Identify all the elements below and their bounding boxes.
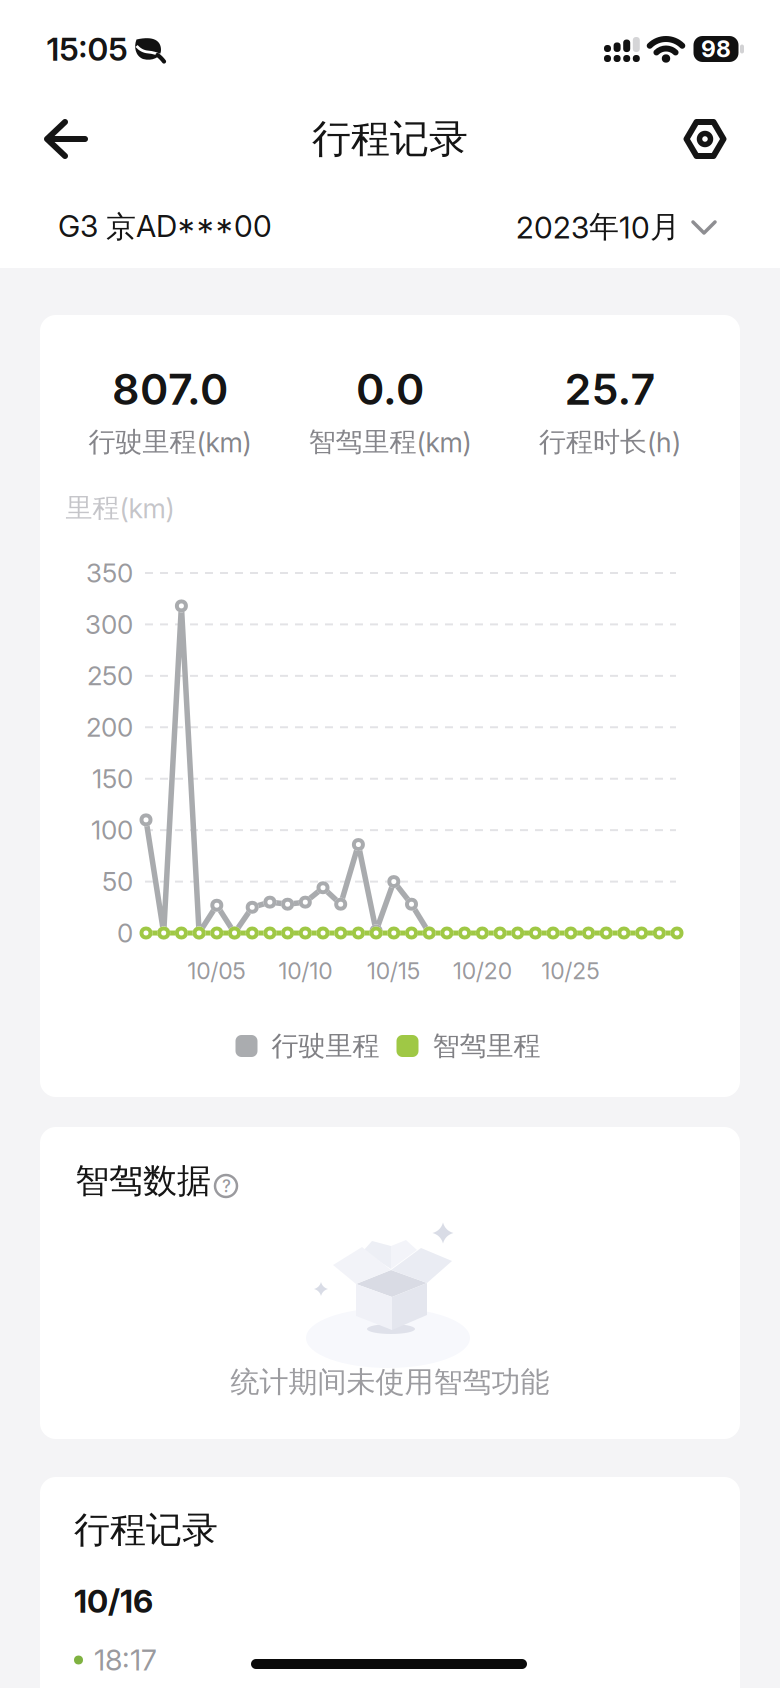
staticText: G3 京AD***00: [58, 208, 272, 246]
staticText: 2023年10月: [516, 208, 680, 246]
staticText: 行程时长(h): [539, 425, 681, 459]
staticText: ?: [222, 1176, 231, 1196]
staticText: 智驾数据: [75, 1160, 211, 1202]
staticText: 15:05: [46, 30, 127, 68]
staticText: 行程记录: [312, 114, 468, 163]
button[interactable]: 2023年10月: [516, 208, 718, 246]
staticText: 300: [85, 609, 133, 640]
staticText: 10/05: [187, 957, 246, 985]
button[interactable]: 18:17: [74, 1642, 706, 1678]
staticText: 智驾里程(km): [308, 425, 471, 459]
staticText: 统计期间未使用智驾功能: [230, 1364, 549, 1400]
staticText: 18:17: [94, 1642, 157, 1678]
staticText: 98: [701, 35, 731, 63]
staticText: 10/15: [367, 957, 421, 985]
button[interactable]: Settings: [677, 111, 733, 167]
staticText: 250: [87, 660, 133, 692]
button[interactable]: About 智驾数据: [204, 1164, 248, 1208]
staticText: 10/25: [541, 957, 600, 985]
staticText: 100: [91, 814, 133, 846]
staticText: 807.0: [112, 363, 228, 415]
staticText: 25.7: [564, 363, 655, 415]
staticText: 10/10: [278, 957, 332, 985]
staticText: 智驾里程: [432, 1029, 540, 1063]
staticText: 0: [117, 917, 133, 949]
button[interactable]: Back: [32, 107, 96, 171]
staticText: 0.0: [356, 363, 424, 415]
staticText: 10/20: [453, 957, 512, 985]
staticText: 200: [86, 712, 133, 743]
staticText: 150: [92, 763, 133, 794]
staticText: 行驶里程: [271, 1029, 379, 1063]
staticText: 行驶里程(km): [88, 425, 251, 459]
staticText: 里程(km): [65, 491, 174, 525]
staticText: 350: [86, 557, 133, 589]
staticText: 行程记录: [74, 1507, 218, 1553]
staticText: 50: [102, 866, 133, 897]
staticText: 10/16: [74, 1582, 153, 1620]
